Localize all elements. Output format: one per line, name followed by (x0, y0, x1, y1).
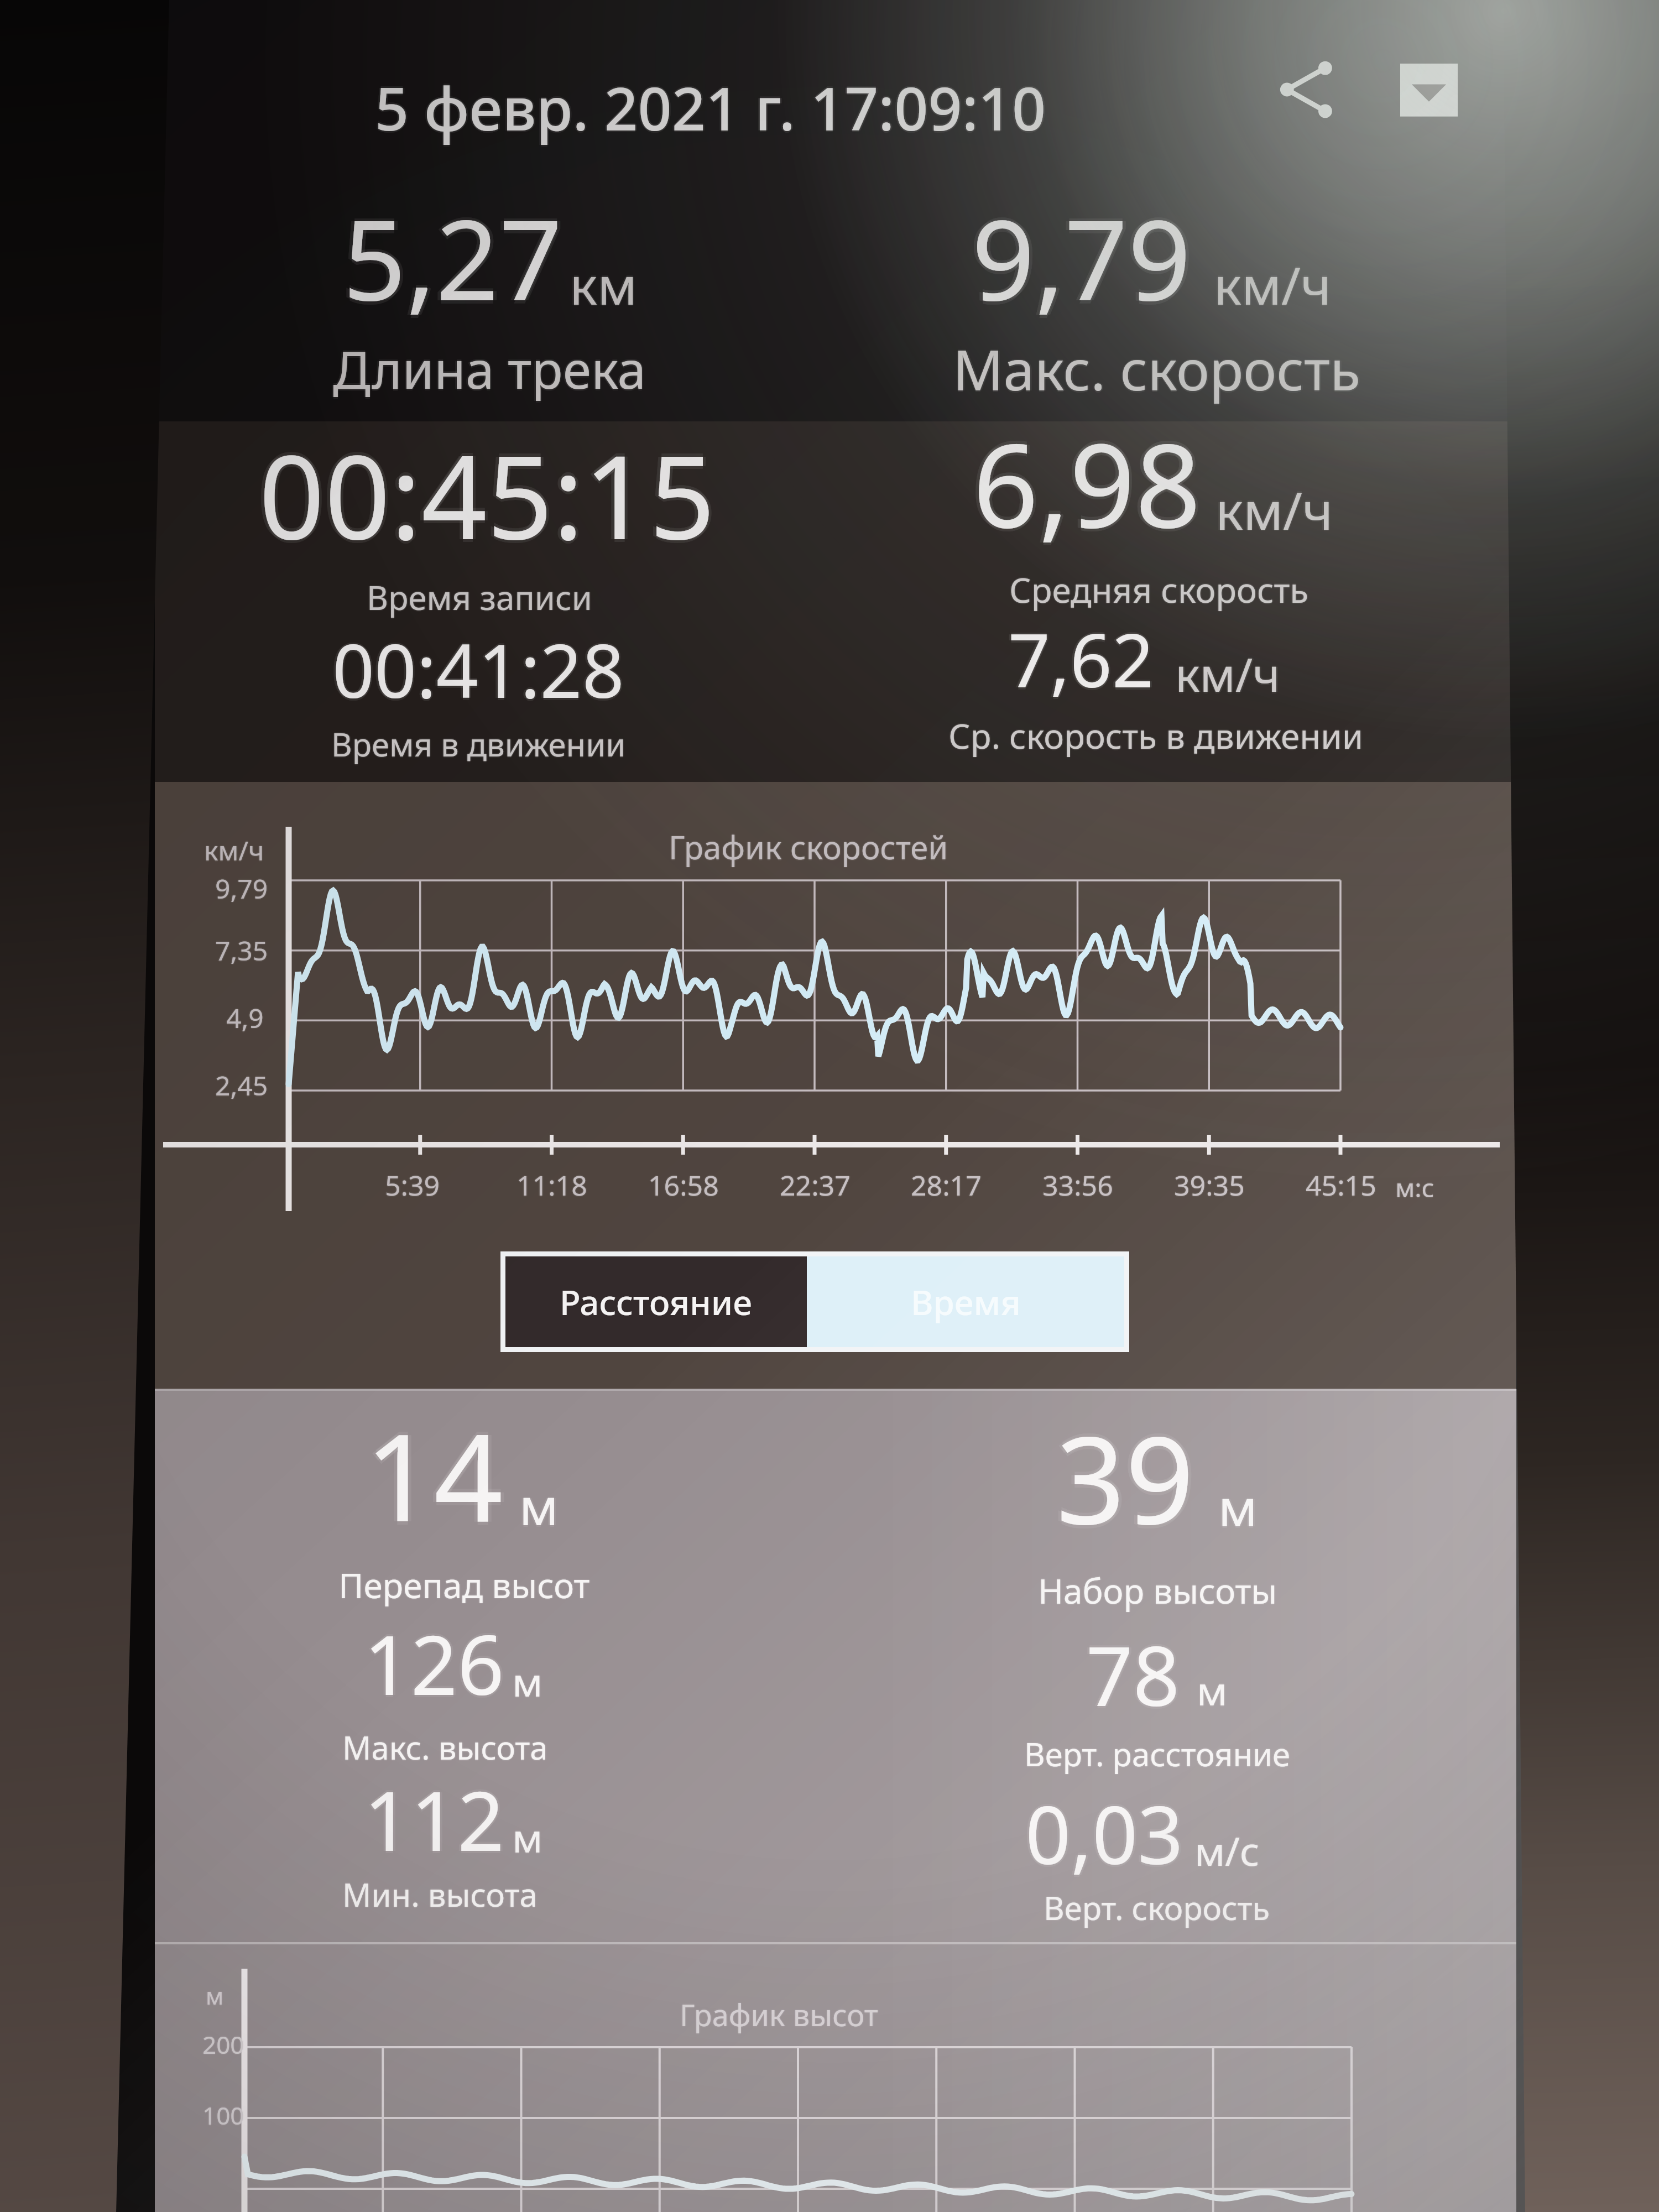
staticText: 39 (1060, 1395, 1198, 1559)
staticText: 28:17 (911, 1165, 982, 1203)
staticText: 5,27 (343, 185, 562, 336)
staticText: м:с (1396, 1170, 1436, 1205)
staticText: 200 (202, 2029, 244, 2062)
staticText: 4,9 (226, 1000, 264, 1036)
staticText: Мин. высота (342, 1872, 538, 1916)
staticText: График скоростей (667, 825, 947, 869)
staticText: Длина трека (334, 334, 648, 404)
staticText: м/с (1194, 1823, 1260, 1877)
staticText: Перепад высот (338, 1563, 590, 1609)
staticText: Перепад высот (338, 1561, 590, 1607)
staticText: Макс. скорость (952, 331, 1360, 407)
staticText: 22:37 (779, 1166, 849, 1204)
staticText: 22:37 (781, 1166, 852, 1204)
staticText: 112 (364, 1766, 504, 1877)
staticText: 11:18 (517, 1166, 587, 1204)
staticText: 00:41:28 (332, 619, 624, 719)
staticText: 00:41:28 (334, 619, 626, 719)
staticText: 112 (364, 1764, 504, 1875)
staticText: Макс. скорость (954, 331, 1363, 407)
staticText: Расстояние (560, 1279, 753, 1325)
staticText: Макс. высота (342, 1726, 548, 1770)
staticText: 2,45 (214, 1067, 267, 1103)
staticText: 9,79 (972, 185, 1191, 336)
staticText: 126 (362, 1608, 502, 1719)
staticText: 5:39 (385, 1166, 440, 1204)
staticText: Средняя скорость (1009, 567, 1309, 614)
staticText: м (1196, 1663, 1227, 1717)
staticText: 6,98 (973, 401, 1201, 558)
staticText: Макс. высота (341, 1725, 547, 1769)
staticText: 39:35 (1174, 1167, 1245, 1205)
staticText: 9,79 (215, 869, 268, 905)
staticText: Время в движении (331, 722, 626, 766)
staticText: 7,35 (214, 932, 267, 968)
staticText: м (207, 1980, 225, 2011)
staticText: м (206, 1980, 224, 2011)
staticText: Мин. высота (343, 1872, 539, 1916)
staticText: км/ч (1212, 249, 1330, 320)
staticText: 16:58 (648, 1166, 719, 1204)
staticText: Мин. высота (342, 1874, 538, 1917)
button[interactable]: Расстояние (505, 1256, 807, 1347)
button[interactable]: Поделиться (1266, 48, 1349, 131)
staticText: 39:35 (1174, 1166, 1245, 1204)
staticText: График высот (679, 1994, 877, 2035)
staticText: 9,79 (975, 182, 1194, 332)
staticText: м (511, 1654, 542, 1708)
staticText: 200 (202, 2028, 244, 2061)
staticText: Время в движении (331, 723, 626, 767)
staticText: 16:58 (649, 1166, 720, 1204)
button[interactable]: Экспорт трека (1387, 51, 1470, 134)
staticText: 6,98 (973, 405, 1201, 561)
staticText: 45:15 (1306, 1167, 1376, 1205)
staticText: м:с (1395, 1169, 1434, 1204)
staticText: 7,35 (215, 932, 268, 968)
staticText: м (521, 1471, 560, 1540)
staticText: м (512, 1811, 543, 1865)
staticText: Верт. расстояние (1024, 1733, 1291, 1777)
staticText: м (206, 1981, 224, 2012)
staticText: Время записи (367, 573, 592, 619)
staticText: 5 февр. 2021 г. 17:09:10 (377, 67, 1048, 148)
staticText: Время (911, 1279, 1021, 1325)
staticText: Верт. скорость (1042, 1886, 1269, 1929)
staticText: км/ч (1214, 249, 1332, 320)
staticText: Набор высоты (1038, 1566, 1277, 1613)
staticText: Длина трека (331, 334, 645, 404)
staticText: 00:45:15 (259, 413, 716, 570)
button[interactable]: Время (807, 1256, 1124, 1347)
staticText: км/ч (1217, 474, 1334, 545)
staticText: 0,03 (1025, 1777, 1183, 1885)
staticText: Длина трека (333, 334, 646, 404)
staticText: 28:17 (912, 1166, 983, 1204)
staticText: 100 (201, 2099, 243, 2132)
staticText: 28:17 (911, 1167, 982, 1205)
staticText: 78 (1088, 1619, 1182, 1730)
staticText: Время в движении (330, 722, 625, 766)
staticText: 00:41:28 (332, 622, 624, 722)
staticText: Средняя скорость (1009, 566, 1309, 613)
staticText: 5 февр. 2021 г. 17:09:10 (375, 69, 1046, 150)
staticText: Средняя скорость (1008, 566, 1308, 613)
staticText: км (571, 249, 639, 320)
staticText: Время записи (367, 575, 592, 620)
staticText: 5,27 (343, 182, 562, 332)
staticText: Макс. высота (342, 1725, 548, 1769)
staticText: 78 (1086, 1621, 1180, 1733)
staticText: Время записи (367, 576, 592, 621)
staticText: 4,9 (227, 1000, 265, 1036)
staticText: Макс. скорость (953, 331, 1361, 407)
staticText: График скоростей (670, 825, 950, 869)
staticText: 7,35 (215, 933, 268, 969)
staticText: км (570, 251, 638, 321)
staticText: 112 (364, 1761, 504, 1873)
staticText: 78 (1086, 1616, 1180, 1728)
staticText: км/ч (1215, 473, 1333, 544)
staticText: 0,03 (1027, 1779, 1186, 1887)
staticText: Средняя скорость (1010, 566, 1310, 613)
staticText: 5 февр. 2021 г. 17:09:10 (375, 66, 1046, 147)
staticText: км (568, 249, 636, 320)
staticText: 00:41:28 (330, 619, 622, 719)
staticText: График высот (680, 1995, 878, 2036)
